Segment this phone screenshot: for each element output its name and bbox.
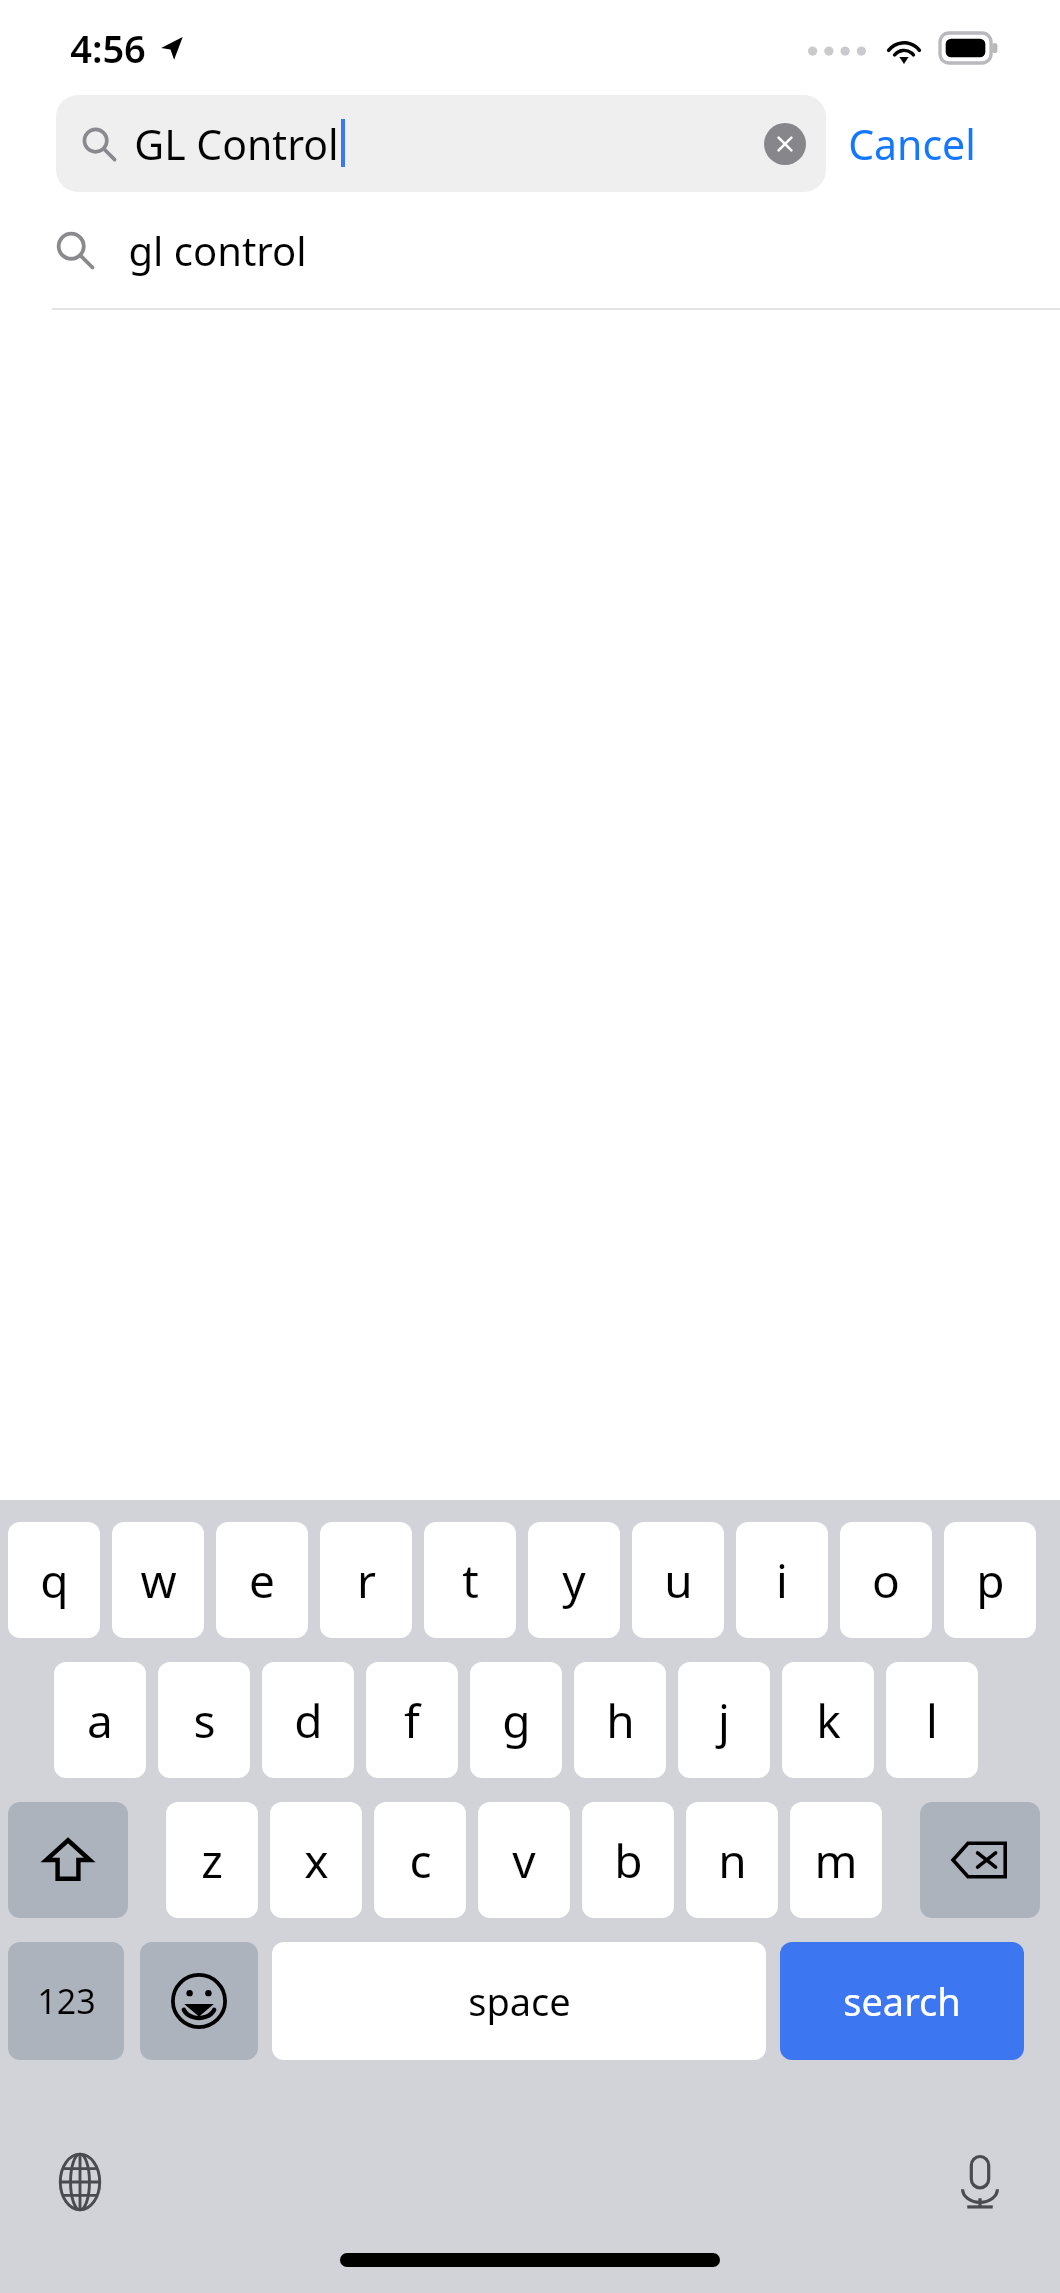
button[interactable]: d <box>262 1662 354 1778</box>
staticText: x <box>304 1829 329 1892</box>
staticText: z <box>201 1829 223 1892</box>
button[interactable]: r <box>320 1522 412 1638</box>
button[interactable]: l <box>886 1662 978 1778</box>
staticText: n <box>718 1829 747 1892</box>
staticText: k <box>816 1689 841 1752</box>
staticText: m <box>814 1829 858 1892</box>
button[interactable]: z <box>166 1802 258 1918</box>
staticText: d <box>294 1689 323 1752</box>
button[interactable]: Shift <box>8 1802 128 1918</box>
button[interactable]: o <box>840 1522 932 1638</box>
button[interactable]: Emoji <box>140 1942 258 2060</box>
button[interactable]: Backspace <box>920 1802 1040 1918</box>
button[interactable]: b <box>582 1802 674 1918</box>
button[interactable]: u <box>632 1522 724 1638</box>
button[interactable]: GL Control <box>56 95 826 192</box>
button[interactable]: j <box>678 1662 770 1778</box>
staticText: GL Control <box>134 116 339 172</box>
button[interactable]: space <box>272 1942 766 2060</box>
staticText: 4:56 <box>70 22 146 74</box>
staticText: j <box>718 1689 730 1752</box>
button[interactable]: e <box>216 1522 308 1638</box>
button[interactable]: s <box>158 1662 250 1778</box>
staticText: u <box>664 1549 693 1612</box>
button[interactable]: search <box>780 1942 1024 2060</box>
staticText: b <box>614 1829 643 1892</box>
button[interactable]: h <box>574 1662 666 1778</box>
button[interactable]: f <box>366 1662 458 1778</box>
staticText: search <box>843 1975 961 2027</box>
button[interactable]: 123 <box>8 1942 124 2060</box>
button[interactable]: Dictation <box>936 2138 1024 2226</box>
staticText: 123 <box>37 1978 96 2024</box>
button[interactable]: Next keyboard <box>36 2138 124 2226</box>
button[interactable]: q <box>8 1522 100 1638</box>
button[interactable]: w <box>112 1522 204 1638</box>
staticText: r <box>357 1549 376 1612</box>
button[interactable]: t <box>424 1522 516 1638</box>
staticText: l <box>926 1689 938 1752</box>
button[interactable]: n <box>686 1802 778 1918</box>
button[interactable]: k <box>782 1662 874 1778</box>
staticText: gl control <box>128 223 307 277</box>
button[interactable]: gl control <box>0 192 1060 308</box>
button[interactable]: Clear text <box>764 123 806 165</box>
button[interactable]: v <box>478 1802 570 1918</box>
button[interactable]: g <box>470 1662 562 1778</box>
staticText: a <box>87 1689 113 1752</box>
staticText: t <box>462 1549 479 1612</box>
staticText: e <box>249 1549 275 1612</box>
button[interactable]: m <box>790 1802 882 1918</box>
staticText: s <box>193 1689 216 1752</box>
staticText: h <box>606 1689 635 1752</box>
staticText: Cancel <box>848 116 976 172</box>
button[interactable]: a <box>54 1662 146 1778</box>
staticText: y <box>562 1549 586 1612</box>
button[interactable]: c <box>374 1802 466 1918</box>
button[interactable]: y <box>528 1522 620 1638</box>
staticText: p <box>976 1549 1005 1612</box>
staticText: f <box>404 1689 420 1752</box>
staticText: w <box>140 1549 177 1612</box>
staticText: q <box>40 1549 69 1612</box>
staticText: o <box>872 1549 900 1612</box>
button[interactable]: x <box>270 1802 362 1918</box>
button[interactable]: p <box>944 1522 1036 1638</box>
button[interactable]: Cancel <box>848 95 976 192</box>
staticText: g <box>502 1689 531 1752</box>
staticText: v <box>512 1829 536 1892</box>
staticText: i <box>776 1549 788 1612</box>
button[interactable]: i <box>736 1522 828 1638</box>
staticText: c <box>409 1829 432 1892</box>
staticText: space <box>468 1975 571 2027</box>
